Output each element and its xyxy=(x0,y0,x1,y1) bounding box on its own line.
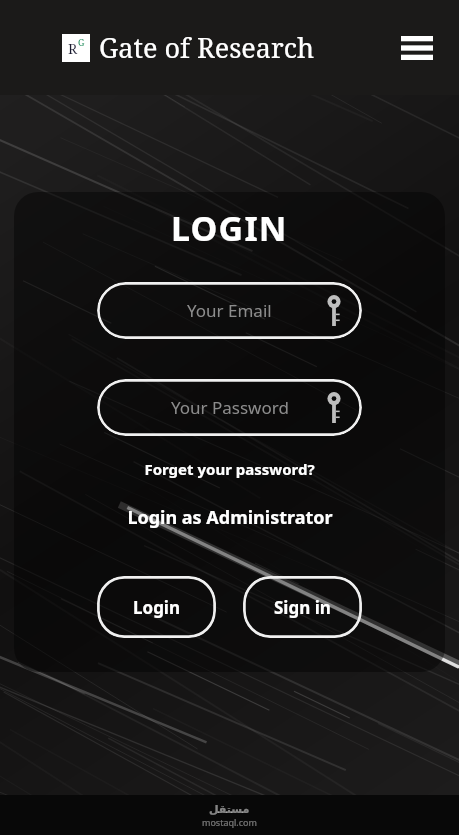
staticText: LOGIN xyxy=(171,205,288,251)
button[interactable]: Login as Administrator xyxy=(123,503,337,532)
button[interactable]: Forget your password? xyxy=(140,457,319,481)
staticText: Sign in xyxy=(274,596,331,619)
staticText: Gate of Research xyxy=(99,29,315,66)
staticText: G xyxy=(78,36,85,48)
staticText: R xyxy=(68,39,78,58)
button[interactable]: Your Password xyxy=(97,379,362,436)
staticText: Your Email xyxy=(187,299,272,322)
staticText: Forget your password? xyxy=(144,459,315,479)
button[interactable]: Your Email xyxy=(97,282,362,339)
button[interactable]: Sign in xyxy=(243,576,362,638)
staticText: Login as Administrator xyxy=(127,505,333,530)
staticText: Your Password xyxy=(171,396,289,419)
button[interactable]: Login xyxy=(97,576,216,638)
staticText: Login xyxy=(133,596,181,619)
staticText: mostaql.com xyxy=(202,816,257,828)
staticText: مستقل xyxy=(209,803,250,816)
button[interactable]: R xyxy=(62,29,315,66)
button[interactable]: Menu xyxy=(397,28,437,68)
